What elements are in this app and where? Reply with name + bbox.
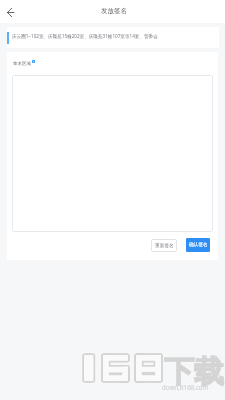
staticText: 重新签名 — [155, 242, 174, 248]
staticText: down.it168.com — [162, 383, 209, 391]
staticText: 发放签名 — [101, 7, 127, 15]
button[interactable]: 重新签名 — [151, 239, 177, 252]
button[interactable]: Back — [3, 5, 17, 19]
button[interactable]: Signature area — [12, 75, 213, 232]
button[interactable]: 确认签名 — [186, 238, 210, 252]
staticText: 签名区域 — [13, 61, 31, 67]
staticText: 庆云圈1~102室、庆隆苑15幢202室、庆隆苑31幢107室等14套、管委会 — [12, 33, 158, 39]
staticText: 确认签名 — [189, 241, 208, 247]
staticText: 下载 — [164, 353, 224, 391]
